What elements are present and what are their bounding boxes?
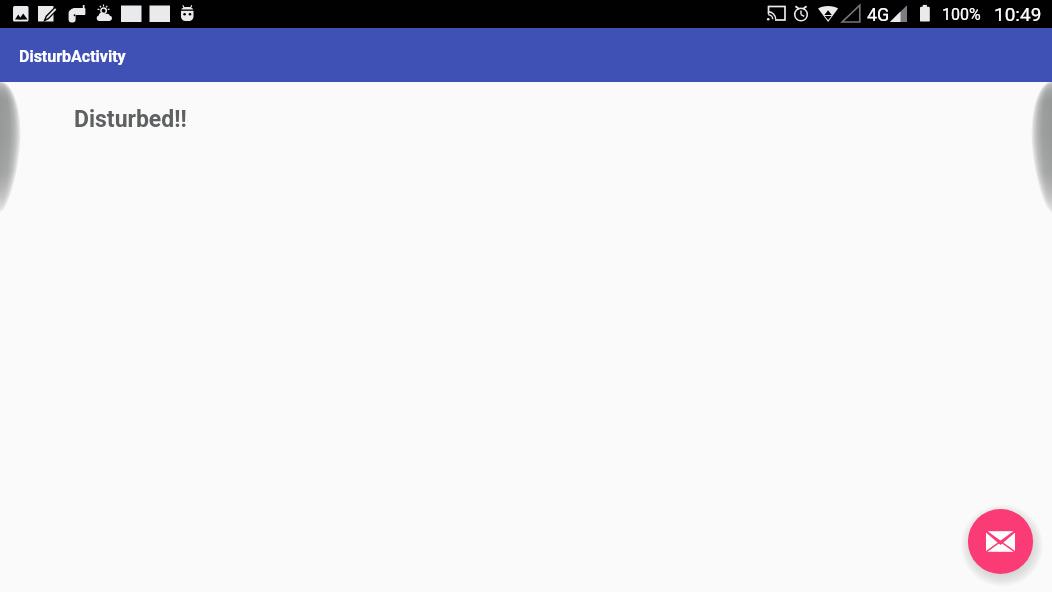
button[interactable]: Compose email [958, 499, 1043, 584]
staticText: DisturbActivity [19, 47, 126, 66]
staticText: 10:49 [994, 3, 1042, 25]
staticText: 4G [867, 4, 890, 25]
staticText: 100% [942, 5, 981, 24]
button[interactable]: DisturbActivity [0, 28, 1052, 82]
staticText: Disturbed!! [74, 106, 187, 133]
